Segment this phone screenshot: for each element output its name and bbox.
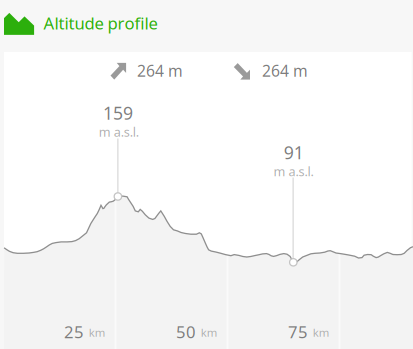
staticText: 264 m — [262, 60, 308, 81]
staticText: km — [313, 325, 330, 340]
staticText: 264 m — [137, 60, 183, 81]
staticText: Altitude profile — [43, 12, 157, 34]
staticText: 159 — [103, 101, 133, 125]
staticText: km — [201, 325, 218, 340]
staticText: 50 — [176, 320, 196, 343]
staticText: m a.s.l. — [273, 163, 313, 180]
staticText: km — [89, 325, 106, 340]
staticText: 91 — [284, 140, 304, 164]
staticText: 25 — [64, 320, 84, 343]
staticText: m a.s.l. — [99, 123, 139, 141]
button[interactable]: Altitude profile — [4, 12, 413, 52]
staticText: 75 — [288, 320, 308, 343]
